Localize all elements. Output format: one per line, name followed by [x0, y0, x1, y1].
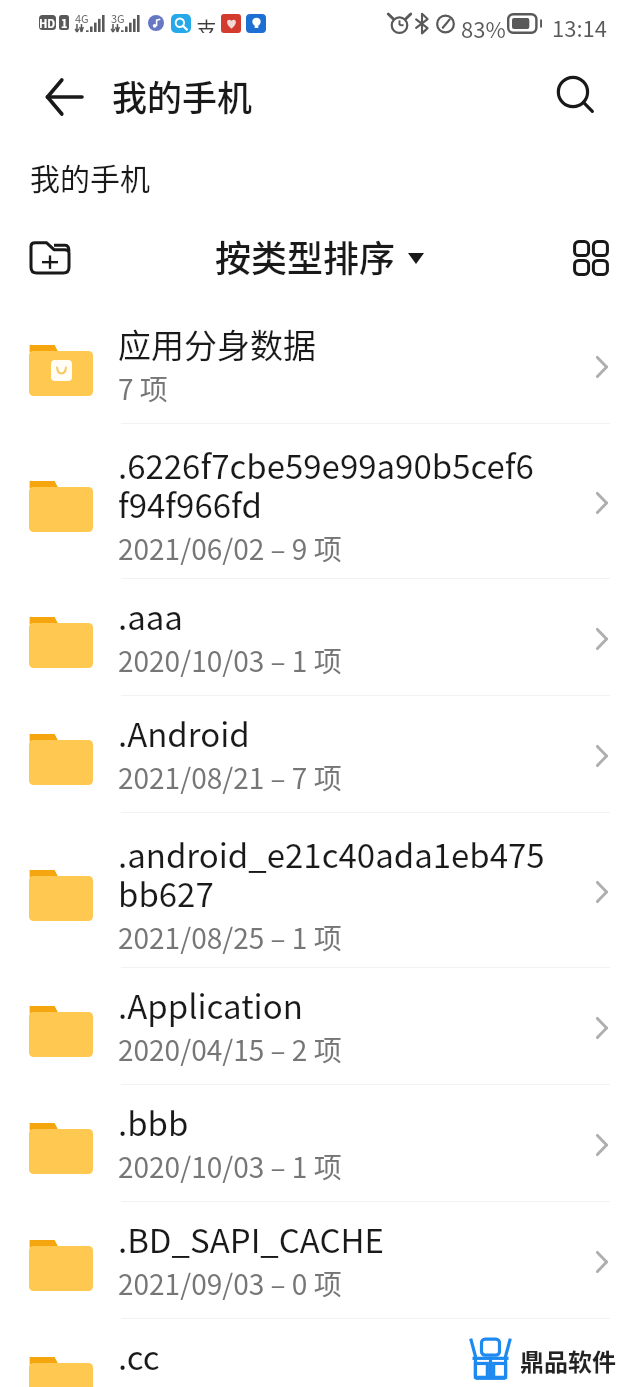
button[interactable]: .Application	[0, 967, 640, 1084]
button[interactable]: 按类型排序	[209, 224, 430, 288]
staticText: 2020/10/03 – 1 项	[118, 1146, 342, 1187]
button[interactable]: .bbb	[0, 1084, 640, 1201]
staticText: 2021/09/03 – 0 项	[118, 1263, 342, 1304]
staticText: .cc	[118, 1332, 160, 1380]
staticText: .bbb	[118, 1098, 189, 1146]
button[interactable]: .aaa	[0, 578, 640, 695]
staticText: HD	[39, 15, 56, 30]
button[interactable]: 应用分身数据	[0, 306, 640, 423]
staticText: 2020/10/03 – 1 项	[118, 640, 342, 681]
button[interactable]: 返回	[19, 62, 109, 132]
staticText: .aaa	[118, 592, 183, 640]
staticText: .6226f7cbe59e99a90b5cef6 f94f966fd	[118, 441, 534, 528]
staticText: .Application	[118, 981, 303, 1029]
staticText: 1	[61, 15, 68, 30]
staticText: 13:14	[552, 11, 607, 43]
button[interactable]: .cc	[0, 1318, 640, 1387]
staticText: 2020/04/15 – 2 项	[118, 1029, 342, 1070]
staticText: .Android	[118, 709, 250, 757]
button[interactable]: 我的手机	[0, 151, 160, 202]
button[interactable]: 新建文件夹	[17, 225, 83, 291]
button[interactable]: .Android	[0, 695, 640, 812]
button[interactable]: .BD_SAPI_CACHE	[0, 1201, 640, 1318]
staticText: 按类型排序	[215, 230, 396, 282]
staticText: 2021/06/02 – 9 项	[118, 528, 342, 569]
staticText: 3G	[111, 10, 125, 26]
button[interactable]: .android_e21c40ada1eb475 bb627	[0, 812, 640, 967]
staticText: 4G	[75, 10, 89, 26]
staticText: .BD_SAPI_CACHE	[118, 1215, 385, 1263]
staticText: .android_e21c40ada1eb475 bb627	[118, 830, 545, 917]
button[interactable]: 切换视图	[557, 224, 625, 292]
staticText: 鼎品软件	[520, 1343, 616, 1378]
button[interactable]: .6226f7cbe59e99a90b5cef6 f94f966fd	[0, 423, 640, 578]
staticText: 7 项	[118, 368, 168, 409]
staticText: 2021/08/25 – 1 项	[118, 917, 342, 958]
staticText: 我的手机	[112, 70, 253, 121]
button[interactable]: 搜索	[541, 60, 611, 130]
staticText: 支	[196, 13, 215, 33]
staticText: 应用分身数据	[118, 320, 316, 368]
staticText: 83%	[461, 12, 506, 44]
staticText: 2021/08/21 – 7 项	[118, 757, 342, 798]
